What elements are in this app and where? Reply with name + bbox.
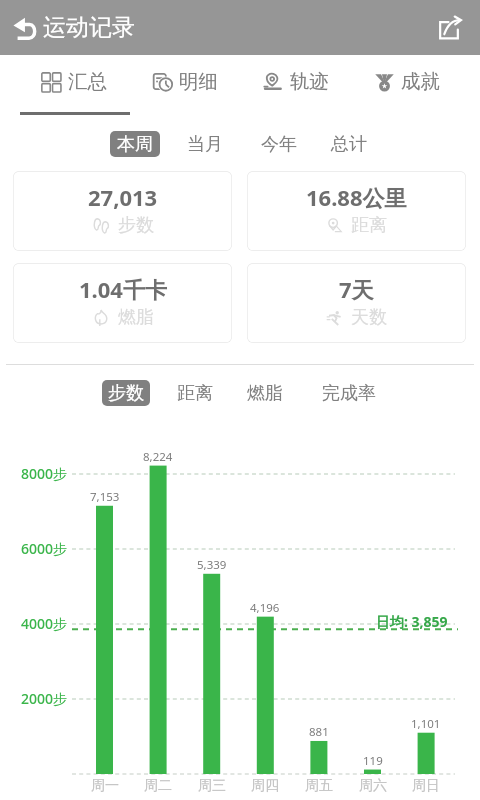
staticText: 明细 — [179, 69, 218, 94]
staticText: 周二 — [144, 777, 172, 795]
staticText: 周一 — [91, 777, 119, 795]
staticText: 汇总 — [68, 69, 107, 94]
button[interactable]: 距离 — [171, 380, 219, 406]
button[interactable]: 成就 — [352, 55, 462, 112]
staticText: 27,013 — [88, 182, 158, 212]
button[interactable]: 当月 — [180, 131, 230, 157]
button[interactable]: 1.04千卡 — [13, 263, 232, 343]
staticText: 周六 — [359, 777, 387, 795]
staticText: 8000步 — [21, 464, 68, 483]
staticText: 7,153 — [90, 489, 120, 505]
button[interactable]: 7天 — [247, 263, 466, 343]
staticText: 总计 — [331, 133, 367, 156]
staticText: 4000步 — [21, 614, 68, 633]
button[interactable]: 27,013 — [13, 171, 232, 251]
button[interactable]: 完成率 — [316, 380, 382, 406]
staticText: 距离 — [351, 214, 387, 237]
staticText: 周日 — [412, 777, 440, 795]
staticText: 成就 — [401, 69, 440, 94]
staticText: 5,339 — [197, 557, 227, 573]
staticText: 燃脂 — [247, 382, 283, 405]
button[interactable]: 本周 — [110, 131, 160, 157]
staticText: 周三 — [198, 777, 226, 795]
staticText: 8,224 — [143, 449, 173, 465]
staticText: 本周 — [117, 133, 153, 156]
staticText: 6000步 — [21, 539, 68, 558]
staticText: 燃脂 — [118, 306, 154, 329]
staticText: 日均: 3,859 — [376, 612, 448, 631]
button[interactable]: 总计 — [324, 131, 374, 157]
staticText: 4,196 — [250, 600, 280, 616]
staticText: 7天 — [339, 274, 374, 304]
button[interactable]: Back — [7, 11, 41, 45]
button[interactable]: 16.88公里 — [247, 171, 466, 251]
staticText: 运动记录 — [43, 13, 135, 42]
staticText: 天数 — [351, 306, 387, 329]
staticText: 完成率 — [322, 382, 376, 405]
staticText: 步数 — [108, 382, 144, 405]
staticText: 119 — [363, 753, 383, 769]
staticText: 今年 — [261, 133, 297, 156]
staticText: 881 — [309, 724, 329, 740]
button[interactable]: 轨迹 — [241, 55, 351, 112]
button[interactable]: 今年 — [254, 131, 304, 157]
staticText: 周五 — [305, 777, 333, 795]
button[interactable]: 步数 — [102, 380, 150, 406]
staticText: 1.04千卡 — [79, 274, 167, 304]
staticText: 2000步 — [21, 689, 68, 708]
staticText: 轨迹 — [290, 69, 329, 94]
button[interactable]: 明细 — [130, 55, 240, 112]
button[interactable]: 汇总 — [19, 55, 129, 112]
staticText: 16.88公里 — [306, 182, 407, 212]
staticText: 1,101 — [411, 716, 441, 732]
staticText: 距离 — [177, 382, 213, 405]
staticText: 当月 — [187, 133, 223, 156]
button[interactable]: Share — [432, 11, 466, 45]
button[interactable]: 燃脂 — [241, 380, 289, 406]
staticText: 步数 — [118, 214, 154, 237]
staticText: 周四 — [251, 777, 279, 795]
